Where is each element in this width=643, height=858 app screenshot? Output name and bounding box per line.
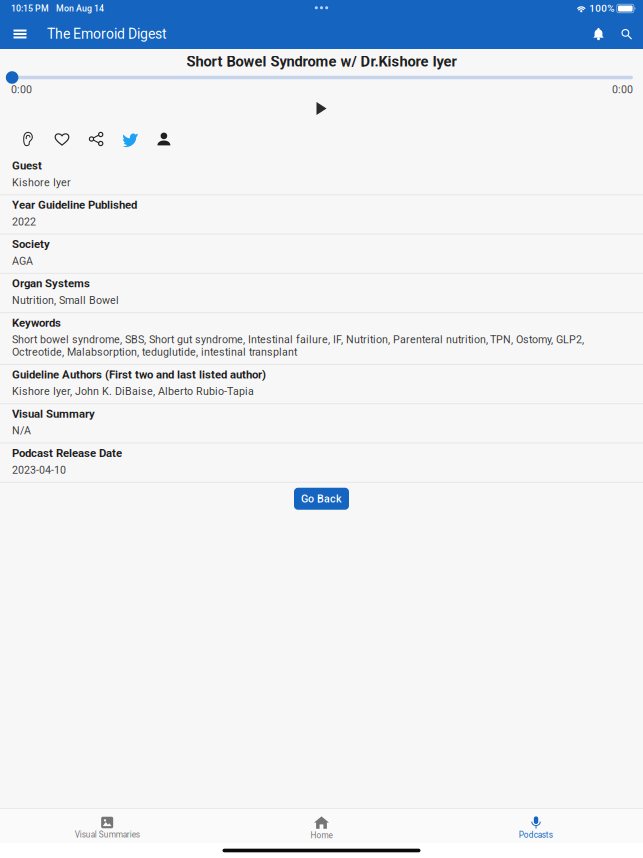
staticText: AGA [12,255,33,267]
button[interactable]: Share [79,127,113,151]
staticText: Keywords [12,316,61,329]
staticText: Society [12,238,50,251]
staticText: 2023-04-10 [12,464,66,476]
button[interactable]: Share on Twitter [113,127,147,151]
staticText: Kishore Iyer, John K. DiBaise, Alberto R… [12,385,254,398]
button[interactable]: Visual Summaries [0,810,214,839]
button[interactable]: Home [214,809,429,840]
staticText: Guest [12,159,42,172]
staticText: Short Bowel Syndrome w/ Dr.Kishore Iyer [186,53,456,70]
button[interactable]: Search [613,19,640,48]
staticText: Mon Aug 14 [56,3,104,14]
staticText: Short bowel syndrome, SBS, Short gut syn… [12,333,584,358]
staticText: Organ Systems [12,277,90,290]
button[interactable]: Profile [147,127,181,151]
staticText: 100% [589,3,614,14]
staticText: Podcast Release Date [12,446,122,460]
staticText: Guideline Authors (First two and last li… [12,368,266,381]
staticText: Kishore Iyer [12,176,71,189]
staticText: 0:00 [612,83,633,96]
staticText: Nutrition, Small Bowel [12,294,119,307]
staticText: N/A [12,424,31,437]
button[interactable]: Favorite [45,127,79,151]
button[interactable]: Menu [4,19,36,48]
staticText: Home [310,830,332,840]
staticText: Visual Summary [12,407,95,420]
button[interactable]: Listen [11,127,45,151]
staticText: 2022 [12,216,36,228]
button[interactable]: Podcasts [429,809,643,840]
staticText: Year Guideline Published [12,198,137,212]
staticText: 10:15 PM [11,3,49,14]
button[interactable]: Notifications [584,19,613,48]
button[interactable]: Play [307,98,335,119]
staticText: Go Back [301,492,342,505]
staticText: Visual Summaries [75,830,140,839]
staticText: Podcasts [519,830,553,840]
staticText: The Emoroid Digest [47,26,167,42]
staticText: 0:00 [11,83,32,96]
button[interactable]: Go Back [294,488,349,510]
